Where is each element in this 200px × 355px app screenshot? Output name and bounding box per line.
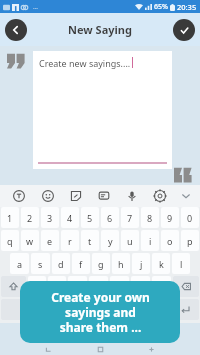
button[interactable]: GIF	[90, 185, 118, 207]
button[interactable]: o	[161, 230, 179, 251]
staticText: y	[108, 235, 113, 247]
button[interactable]: z	[28, 276, 46, 297]
staticText: 65%	[154, 2, 168, 12]
button[interactable]: 7	[121, 207, 139, 228]
button[interactable]: t	[81, 230, 99, 251]
button[interactable]: 0	[181, 207, 199, 228]
button[interactable]: 9	[161, 207, 179, 228]
button[interactable]: More	[174, 185, 197, 207]
staticText: 20:35	[177, 2, 197, 12]
button[interactable]: Space	[52, 299, 148, 320]
button[interactable]: b	[110, 276, 129, 297]
button[interactable]: 6	[101, 207, 119, 228]
button[interactable]: 2	[21, 207, 39, 228]
button[interactable]: Create your own sayings and share them .…	[20, 281, 180, 343]
button[interactable]: s	[31, 253, 50, 274]
staticText: 0	[187, 212, 193, 224]
button[interactable]: x	[48, 276, 66, 297]
button[interactable]: e	[41, 230, 59, 251]
button[interactable]: h	[112, 253, 130, 274]
staticText: Create new sayings....	[39, 57, 131, 69]
button[interactable]: Symbols	[1, 299, 28, 320]
staticText: ...	[33, 3, 39, 11]
button[interactable]: Stickers	[62, 185, 90, 207]
button[interactable]: 3	[41, 207, 59, 228]
button[interactable]: 5	[81, 207, 99, 228]
button[interactable]: Shift	[1, 276, 26, 297]
button[interactable]: u	[121, 230, 139, 251]
button[interactable]: 8	[141, 207, 159, 228]
button[interactable]: m	[152, 276, 171, 297]
button[interactable]: 1	[1, 207, 19, 228]
button[interactable]: j	[132, 253, 150, 274]
button[interactable]: Save	[173, 19, 195, 41]
button[interactable]: n	[131, 276, 150, 297]
staticText: 3	[47, 212, 53, 224]
button[interactable]: Backspace	[173, 276, 199, 297]
button[interactable]: c	[68, 276, 87, 297]
staticText: w	[26, 235, 34, 247]
staticText: d	[58, 258, 64, 270]
staticText: s	[38, 258, 43, 270]
staticText: 1	[7, 212, 13, 224]
button[interactable]: r	[61, 230, 79, 251]
staticText: t	[88, 235, 92, 247]
staticText: p	[187, 235, 193, 247]
staticText: 5	[87, 212, 93, 224]
staticText: o	[167, 235, 173, 247]
staticText: 7	[127, 212, 133, 224]
staticText: f	[79, 258, 83, 270]
staticText: 2	[27, 212, 33, 224]
staticText: Create your own sayings and share them .…	[51, 289, 150, 335]
button[interactable]: v	[89, 276, 108, 297]
button[interactable]: Create new sayings....	[33, 51, 172, 169]
button[interactable]: p	[181, 230, 199, 251]
button[interactable]: w	[21, 230, 39, 251]
staticText: h	[118, 258, 124, 270]
staticText: 4	[67, 212, 73, 224]
button[interactable]: y	[101, 230, 119, 251]
button[interactable]: g	[92, 253, 110, 274]
button[interactable]: Settings	[146, 185, 174, 207]
staticText: l	[180, 258, 183, 270]
button[interactable]: Back	[5, 19, 27, 41]
staticText: r	[68, 235, 72, 247]
staticText: u	[127, 235, 133, 247]
button[interactable]: Translate	[4, 185, 33, 207]
staticText: 9	[167, 212, 173, 224]
button[interactable]: d	[52, 253, 70, 274]
staticText: New Saying	[68, 22, 132, 37]
button[interactable]: Voice input	[118, 185, 146, 207]
staticText: k	[159, 258, 164, 270]
staticText: q	[7, 235, 13, 247]
button[interactable]: q	[1, 230, 19, 251]
button[interactable]: a	[10, 253, 29, 274]
button[interactable]: Enter	[172, 299, 199, 320]
button[interactable]: l	[172, 253, 190, 274]
staticText: g	[98, 258, 104, 270]
button[interactable]: f	[72, 253, 90, 274]
staticText: 6	[107, 212, 113, 224]
staticText: i	[149, 235, 152, 247]
button[interactable]: i	[141, 230, 159, 251]
button[interactable]: 4	[61, 207, 79, 228]
staticText: j	[140, 258, 143, 270]
staticText: 8	[147, 212, 153, 224]
staticText: a	[17, 258, 23, 270]
button[interactable]: Emoji	[33, 185, 62, 207]
button[interactable]: k	[152, 253, 170, 274]
staticText: e	[47, 235, 53, 247]
